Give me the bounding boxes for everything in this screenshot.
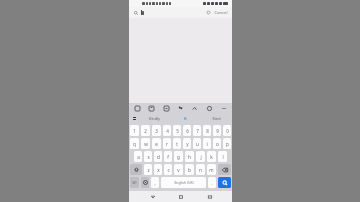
button[interactable]: r	[163, 138, 171, 149]
staticText: Kindly	[149, 116, 160, 121]
button[interactable]: More options	[219, 104, 228, 113]
button[interactable]: g	[174, 151, 183, 162]
button[interactable]: Symbols	[130, 177, 139, 188]
button[interactable]: Cancel	[213, 10, 229, 16]
button[interactable]: Kindly	[139, 114, 170, 123]
button[interactable]: 2	[141, 125, 150, 136]
button[interactable]: x	[154, 164, 162, 175]
staticText: v	[177, 167, 180, 173]
button[interactable]: q	[130, 138, 139, 149]
button[interactable]: f	[164, 151, 172, 162]
staticText: 6	[186, 128, 189, 134]
staticText: 8	[206, 128, 209, 134]
staticText: m	[209, 167, 214, 173]
button[interactable]: .	[208, 177, 216, 188]
button[interactable]: 3	[152, 125, 161, 136]
staticText: f	[167, 154, 169, 160]
button[interactable]: Kind	[201, 114, 232, 123]
button[interactable]: h	[185, 151, 194, 162]
staticText: e	[155, 141, 158, 147]
staticText: Cancel	[214, 10, 228, 16]
staticText: l	[222, 154, 224, 160]
staticText: 5	[176, 128, 179, 134]
button[interactable]: Handwriting	[190, 104, 199, 113]
button[interactable]: Sticker	[147, 104, 156, 113]
button[interactable]: 8	[203, 125, 211, 136]
button[interactable]: b	[185, 164, 194, 175]
button[interactable]: Settings	[205, 104, 214, 113]
staticText: 3	[155, 128, 158, 134]
button[interactable]: 1	[130, 125, 139, 136]
staticText: d	[157, 154, 160, 160]
staticText: 4	[166, 128, 169, 134]
button[interactable]: k	[207, 151, 216, 162]
button[interactable]: Clipboard	[162, 104, 171, 113]
button[interactable]: o	[213, 138, 221, 149]
staticText: x	[157, 167, 160, 173]
button[interactable]: 7	[193, 125, 201, 136]
button[interactable]: l	[218, 151, 227, 162]
staticText: !#1	[132, 181, 137, 185]
staticText: ,	[154, 180, 156, 186]
button[interactable]: Expand suggestions	[129, 114, 139, 123]
staticText: K	[184, 116, 187, 121]
button[interactable]: English (UK)	[161, 177, 206, 188]
staticText: 1	[133, 128, 136, 134]
staticText: 7	[196, 128, 199, 134]
staticText: .	[211, 180, 213, 186]
staticText: 9	[216, 128, 219, 134]
button[interactable]: d	[154, 151, 162, 162]
button[interactable]: Emoji	[133, 104, 142, 113]
button[interactable]: t	[173, 138, 181, 149]
button[interactable]: 5	[173, 125, 181, 136]
button[interactable]: Recents	[204, 191, 215, 202]
staticText: o	[216, 141, 219, 147]
staticText: English (UK)	[174, 180, 194, 185]
button[interactable]: K	[170, 114, 201, 123]
button[interactable]: 9	[213, 125, 221, 136]
button[interactable]: u	[193, 138, 201, 149]
staticText: b	[188, 167, 191, 173]
staticText: r	[166, 141, 168, 147]
button[interactable]: z	[144, 164, 152, 175]
button[interactable]: s	[144, 151, 152, 162]
button[interactable]: 4	[163, 125, 171, 136]
button[interactable]: Search	[132, 9, 140, 17]
staticText: h	[188, 154, 191, 160]
button[interactable]: e	[152, 138, 161, 149]
button[interactable]: Clear	[205, 9, 212, 16]
button[interactable]: Backspace	[218, 164, 231, 175]
button[interactable]: Translate	[176, 104, 185, 113]
staticText: c	[167, 167, 170, 173]
staticText: a	[137, 154, 140, 160]
button[interactable]: p	[223, 138, 231, 149]
button[interactable]: w	[141, 138, 150, 149]
staticText: g	[177, 154, 180, 160]
staticText: 2	[144, 128, 147, 134]
button[interactable]: Back	[147, 191, 158, 202]
staticText: i	[206, 141, 208, 147]
staticText: t	[176, 141, 178, 147]
button[interactable]: c	[164, 164, 172, 175]
button[interactable]: y	[183, 138, 191, 149]
button[interactable]: Shift	[130, 164, 142, 175]
staticText: 0	[226, 128, 229, 134]
staticText: p	[226, 141, 229, 147]
button[interactable]: 0	[223, 125, 231, 136]
staticText: y	[186, 141, 189, 147]
button[interactable]: ,	[151, 177, 159, 188]
staticText: u	[196, 141, 199, 147]
button[interactable]: m	[207, 164, 216, 175]
button[interactable]: Home	[175, 191, 186, 202]
button[interactable]: Settings	[141, 177, 149, 188]
button[interactable]: n	[196, 164, 205, 175]
button[interactable]: i	[203, 138, 211, 149]
button[interactable]: v	[174, 164, 183, 175]
button[interactable]: Search	[218, 177, 231, 188]
staticText: k	[210, 154, 213, 160]
button[interactable]: j	[196, 151, 205, 162]
button[interactable]: a	[134, 151, 142, 162]
staticText: s	[147, 154, 150, 160]
staticText: Kind	[212, 116, 221, 121]
button[interactable]: 6	[183, 125, 191, 136]
